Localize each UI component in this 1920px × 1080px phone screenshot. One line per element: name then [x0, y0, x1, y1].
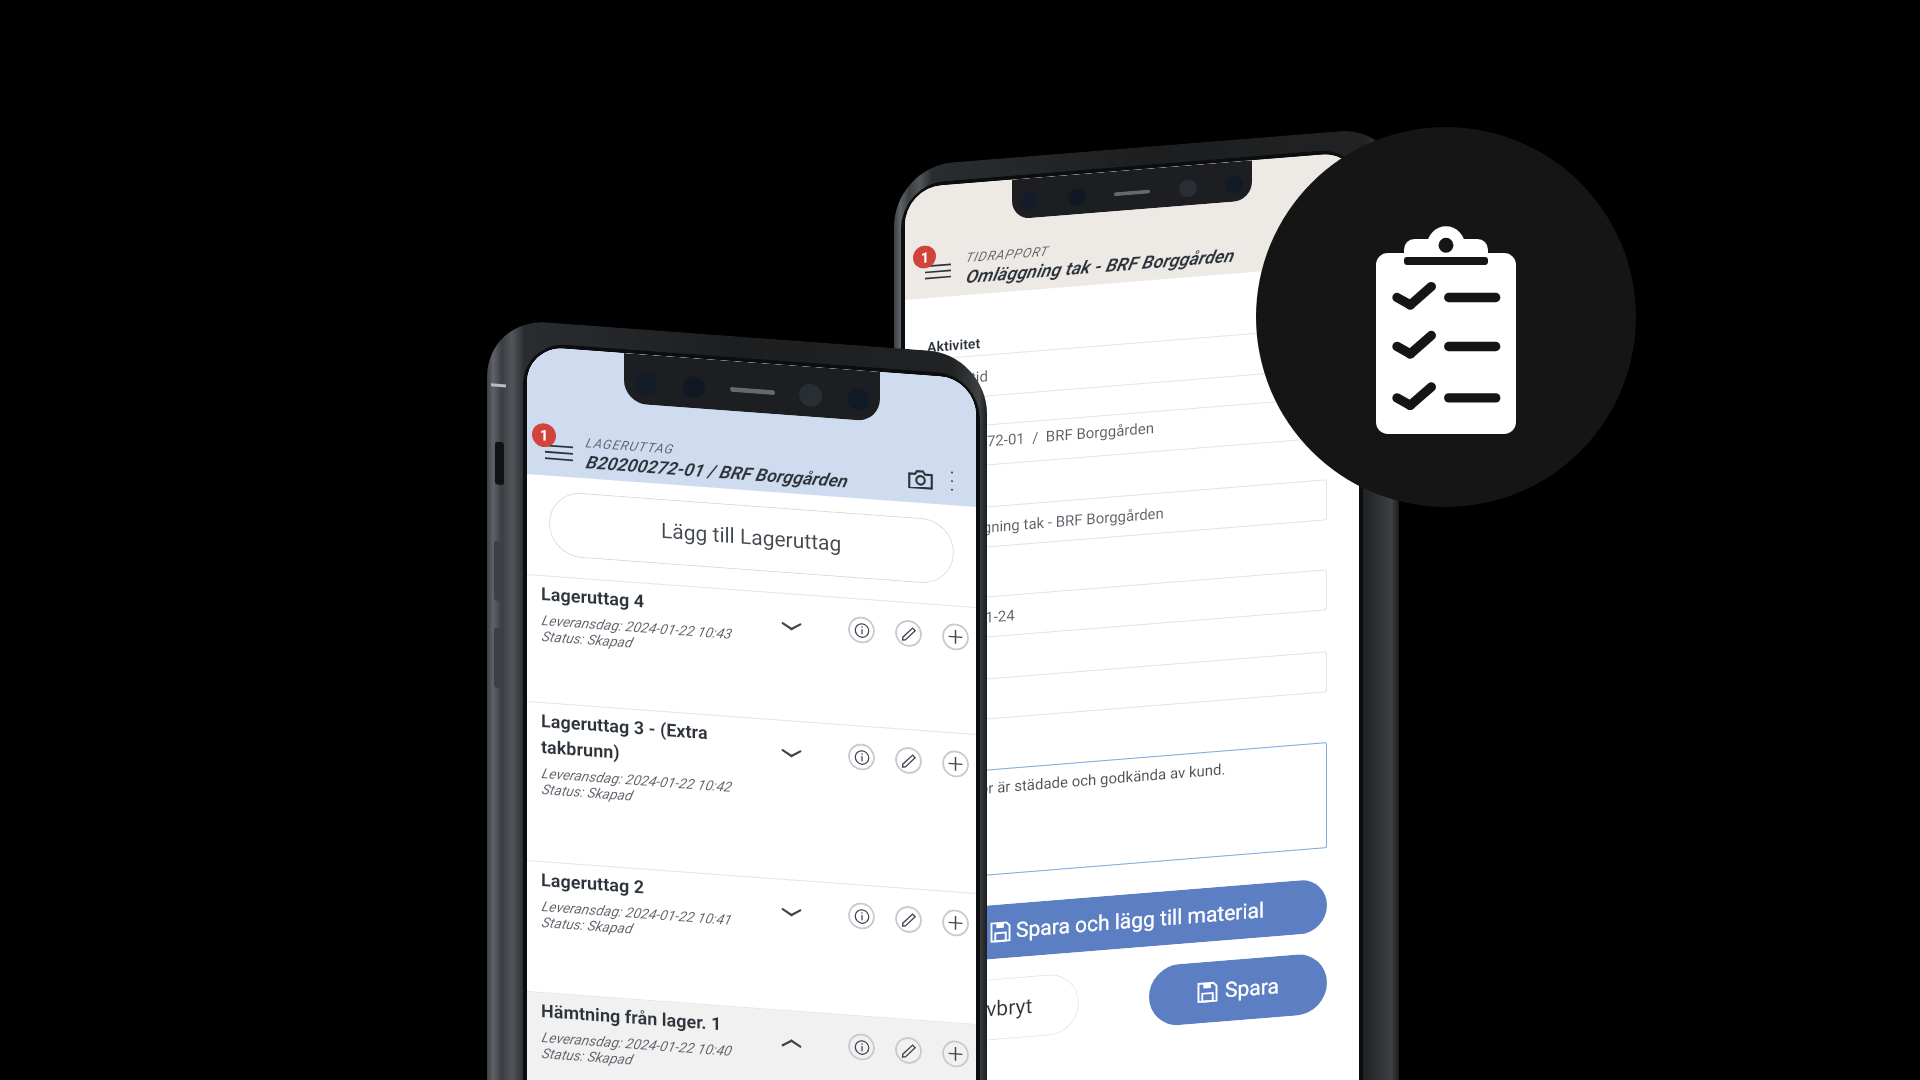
button[interactable]: Spara [1118, 870, 1357, 1080]
staticText: LAGERUTTAG [577, 394, 681, 498]
button[interactable]: Hämtning från lager. 1 [464, 783, 1039, 1080]
button[interactable]: Expand [757, 1009, 825, 1077]
button[interactable]: Spara och lägg till material [900, 694, 1354, 1080]
staticText: B20200272-01 / BRF Borggården [918, 314, 1163, 560]
button[interactable]: Add [928, 610, 982, 664]
staticText: Leveransdag: 2024-01-22 10:40 [533, 941, 739, 1080]
button[interactable]: Lageruttag 4 [464, 366, 1039, 942]
button[interactable]: Edit [881, 606, 935, 660]
button[interactable]: Avbryt [896, 902, 1109, 1080]
staticText: Lägg till Lageruttag [648, 435, 854, 641]
staticText: Status: Skapad [533, 872, 640, 979]
button[interactable]: Add [928, 737, 982, 791]
button[interactable]: Add [928, 896, 982, 950]
staticText: Alla ytor är städade och godkända av kun… [930, 628, 1235, 934]
staticText: TIDRAPPORT [957, 205, 1055, 303]
staticText: Leveransdag: 2024-01-22 10:42 [533, 677, 739, 883]
button[interactable]: Lageruttag 2 [462, 652, 1041, 1080]
button[interactable]: Lageruttag 3 - (Extra takbrunn) [448, 493, 1055, 1080]
staticText: Spara och lägg till material [1003, 783, 1277, 1058]
staticText: Lageruttag 3 - (Extra takbrunn) [517, 602, 797, 882]
button[interactable]: Expand [757, 592, 825, 660]
staticText: Projekt [919, 381, 981, 443]
button[interactable]: Info [834, 730, 888, 784]
button[interactable]: Expand [757, 719, 825, 787]
staticText: Status: Skapad [533, 1003, 640, 1080]
staticText: Status: Skapad [533, 586, 640, 693]
staticText: 2024-01-24 [930, 571, 1024, 665]
staticText: 1 [531, 423, 557, 449]
button[interactable]: Edit [881, 892, 935, 946]
button[interactable]: Edit [881, 1023, 935, 1077]
button[interactable]: More options [928, 457, 976, 505]
staticText: Spara [1212, 949, 1291, 1028]
staticText: Leveransdag: 2024-01-22 10:41 [533, 810, 739, 1016]
staticText: Omläggning tak - BRF Borggården [954, 121, 1244, 411]
staticText: B20200272-01 / BRF Borggården [574, 330, 857, 613]
button[interactable]: Lägg till Lageruttag [516, 302, 986, 773]
button[interactable]: Info [834, 889, 888, 943]
staticText: Leveransdag: 2024-01-22 10:43 [533, 524, 739, 730]
staticText: Hämtning från lager. 1 [530, 916, 732, 1080]
staticText: Arbetstid [918, 339, 997, 418]
button[interactable]: Edit [881, 733, 935, 787]
button[interactable]: Info [834, 603, 888, 657]
staticText: Omläggning tak - BRF Borggården [930, 401, 1173, 644]
button[interactable]: Info [834, 1020, 888, 1074]
button[interactable]: Expand [757, 878, 825, 946]
button[interactable]: Checklist [1256, 127, 1636, 507]
staticText: Lageruttag 2 [530, 821, 654, 945]
staticText: 1 [913, 245, 937, 269]
button[interactable]: Camera [888, 447, 952, 511]
staticText: Aktivitet [919, 310, 989, 380]
staticText: Avbryt [960, 966, 1045, 1051]
button[interactable]: Add [928, 1027, 982, 1080]
staticText: Status: Skapad [533, 739, 640, 846]
staticText: Lageruttag 4 [530, 535, 654, 659]
